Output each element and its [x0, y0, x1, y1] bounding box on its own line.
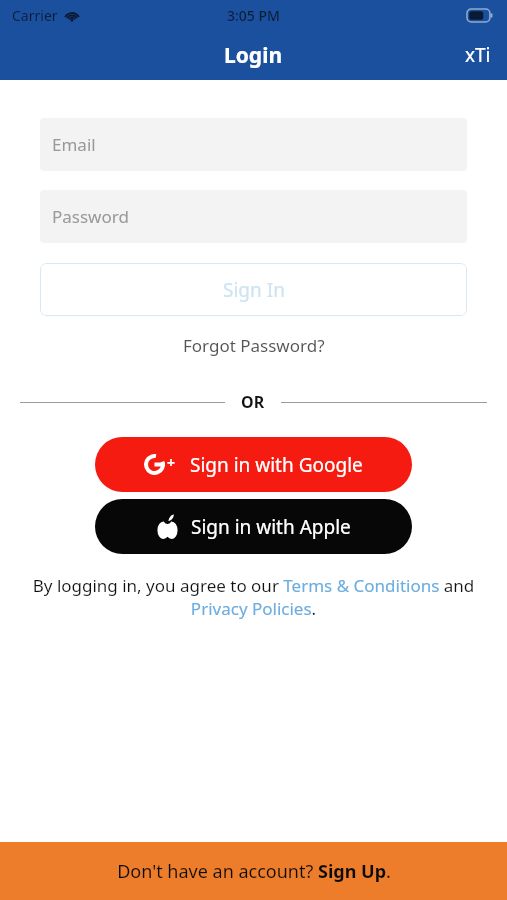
button[interactable]: Google — [95, 437, 412, 492]
staticText: xTi — [465, 42, 491, 68]
other: Apple — [157, 514, 178, 539]
staticText: 3:05 PM — [227, 6, 280, 25]
button[interactable]: Forgot Password? — [173, 330, 335, 361]
other: Wi-Fi — [64, 10, 80, 22]
button[interactable]: Email — [40, 118, 467, 171]
button[interactable]: Password — [40, 190, 467, 243]
button[interactable]: Don't have an account? Sign Up. — [0, 842, 507, 900]
staticText: Sign In — [223, 277, 285, 303]
other: Google — [144, 454, 165, 475]
button[interactable]: Apple — [95, 499, 412, 554]
staticText: OR — [241, 391, 265, 413]
staticText: Password — [52, 205, 129, 228]
staticText: Login — [224, 41, 283, 70]
button[interactable]: xTi — [449, 34, 507, 76]
button[interactable]: Sign In — [40, 263, 467, 316]
staticText: Don't have an account? Sign Up. — [117, 859, 391, 884]
staticText: + — [167, 453, 176, 472]
other: Battery — [467, 9, 493, 22]
button[interactable]: By logging in, you agree to our Terms & … — [20, 574, 487, 620]
staticText: Carrier — [12, 6, 58, 25]
staticText: Sign in with Google — [190, 452, 363, 478]
staticText: Forgot Password? — [183, 334, 325, 357]
staticText: Email — [52, 133, 96, 156]
staticText: Sign in with Apple — [191, 514, 351, 540]
